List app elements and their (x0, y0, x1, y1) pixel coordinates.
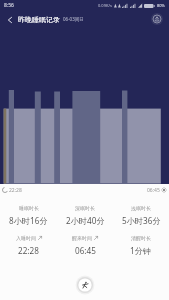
button[interactable]: 入睡时间 (0, 235, 57, 256)
button[interactable]: 深眠时长 (57, 205, 113, 226)
staticText: 深眠时长 (75, 205, 95, 211)
staticText: 醒来时间 (72, 235, 92, 241)
staticText: 22:28 (18, 245, 39, 256)
staticText: 8小时16分 (9, 215, 48, 226)
button[interactable]: 睡眠时长 (0, 205, 57, 226)
staticText: 8:56 (4, 2, 14, 9)
button[interactable]: Back (3, 13, 16, 26)
staticText: 5小时36分 (122, 215, 161, 226)
staticText: 80% (157, 3, 165, 8)
staticText: 浅眠时长 (131, 205, 151, 211)
staticText: 22:28 (9, 187, 22, 194)
staticText: 06-03周日 (63, 16, 84, 22)
staticText: 2小时40分 (66, 215, 105, 226)
button[interactable]: 浅眠时长 (113, 205, 169, 226)
staticText: 1分钟 (130, 245, 152, 256)
staticText: 清醒时长 (131, 235, 151, 241)
staticText: 入睡时间 (16, 235, 36, 241)
staticText: 睡眠时长 (19, 205, 39, 211)
button[interactable]: Share (151, 13, 163, 25)
staticText: 昨晚睡眠记录 (18, 15, 60, 24)
button[interactable]: 醒来时间 (57, 235, 113, 256)
button[interactable]: 清醒时长 (113, 235, 169, 256)
staticText: 0.09K/s (98, 3, 112, 8)
staticText: 06:45 (147, 187, 160, 194)
button[interactable]: Activity (75, 275, 95, 295)
staticText: 06:45 (75, 245, 96, 256)
